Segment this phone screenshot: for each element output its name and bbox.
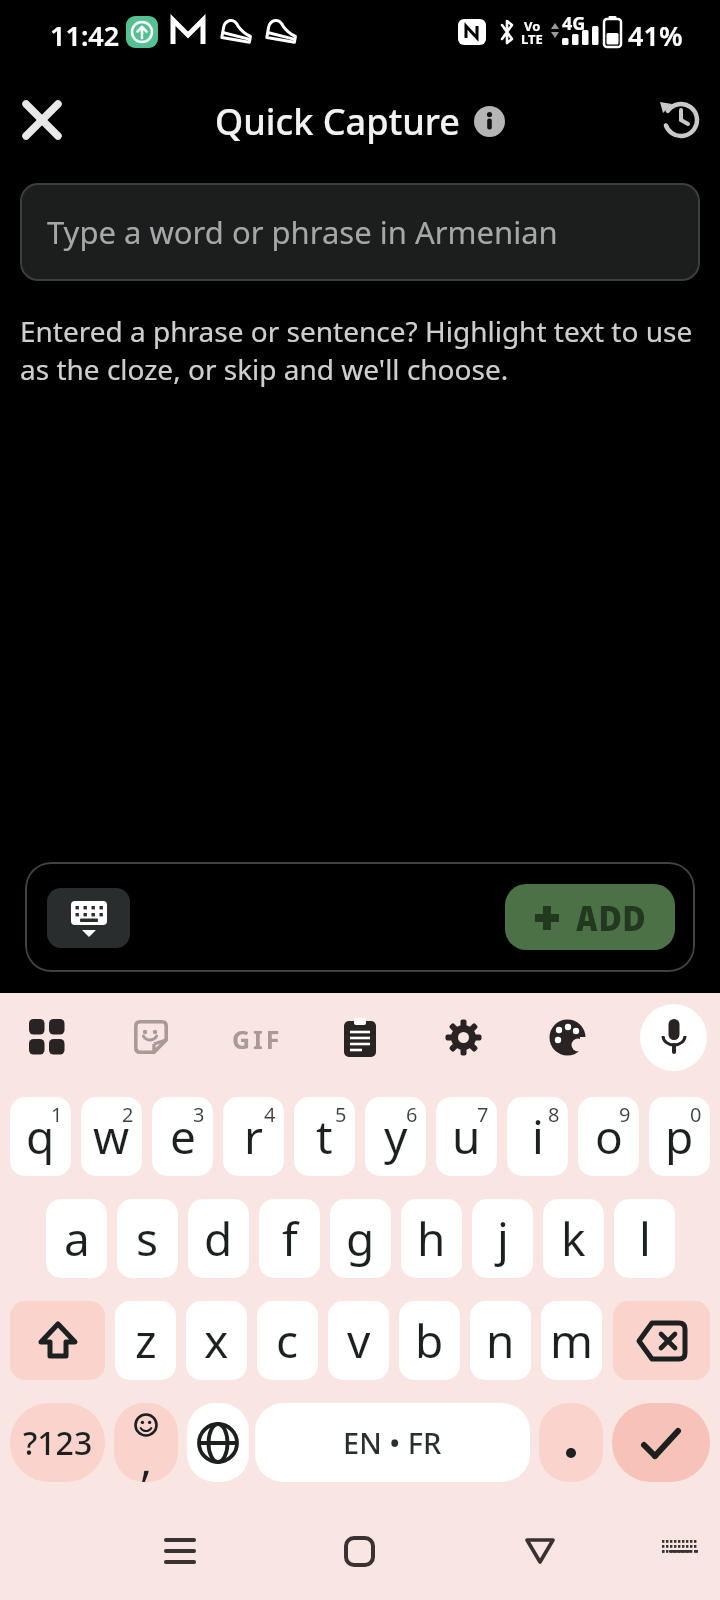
staticText: n — [486, 1309, 515, 1372]
button[interactable] — [10, 1301, 105, 1380]
staticText: k — [561, 1207, 586, 1270]
staticText: i — [532, 1105, 544, 1168]
button[interactable]: ?123 — [10, 1403, 105, 1482]
button[interactable]: c — [257, 1301, 318, 1380]
button[interactable] — [16, 94, 68, 146]
staticText: 0 — [690, 1101, 702, 1128]
staticText: Quick Capture — [215, 97, 460, 146]
staticText: u — [452, 1105, 481, 1168]
staticText: 5 — [335, 1101, 347, 1128]
button[interactable]: o — [578, 1097, 639, 1176]
staticText: s — [136, 1207, 159, 1270]
staticText: 9 — [619, 1101, 631, 1128]
staticText: g — [346, 1207, 375, 1270]
button[interactable]: h — [401, 1199, 462, 1278]
button[interactable] — [539, 1403, 603, 1482]
staticText: LTE — [521, 30, 543, 48]
button[interactable]: r — [223, 1097, 284, 1176]
staticText: 6 — [406, 1101, 418, 1128]
button[interactable] — [510, 1521, 570, 1581]
button[interactable]: e — [152, 1097, 213, 1176]
button[interactable] — [640, 1004, 707, 1071]
staticText: 11:42 — [50, 17, 120, 54]
staticText: ?123 — [23, 1421, 93, 1465]
button[interactable]: b — [399, 1301, 460, 1380]
staticText: 2 — [122, 1101, 134, 1128]
staticText: x — [204, 1309, 229, 1372]
staticText: Vo — [524, 17, 541, 35]
button[interactable] — [549, 1019, 586, 1056]
staticText: 8 — [548, 1101, 560, 1128]
button[interactable]: s — [117, 1199, 178, 1278]
staticText: Type a word or phrase in Armenian — [47, 211, 558, 253]
button[interactable] — [652, 92, 708, 148]
staticText: 41% — [628, 17, 683, 54]
staticText: EN • FR — [343, 1423, 442, 1462]
staticText: GIF — [232, 1022, 283, 1056]
button[interactable]: l — [614, 1199, 675, 1278]
staticText: t — [316, 1105, 333, 1168]
button[interactable]: z — [115, 1301, 176, 1380]
button[interactable]: i — [507, 1097, 568, 1176]
staticText: p — [665, 1105, 694, 1168]
staticText: 3 — [193, 1101, 205, 1128]
staticText: h — [417, 1207, 446, 1270]
button[interactable]: ADD — [505, 884, 675, 950]
button[interactable]: g — [330, 1199, 391, 1278]
button[interactable] — [445, 1019, 482, 1056]
staticText: r — [244, 1105, 263, 1168]
staticText: z — [135, 1309, 157, 1372]
staticText: y — [384, 1105, 408, 1168]
button[interactable] — [134, 1020, 168, 1054]
button[interactable]: x — [186, 1301, 247, 1380]
staticText: m — [550, 1309, 594, 1372]
staticText: l — [639, 1207, 651, 1270]
staticText: ADD — [576, 893, 647, 942]
staticText: c — [276, 1309, 299, 1372]
button[interactable]: k — [543, 1199, 604, 1278]
button[interactable] — [150, 1521, 210, 1581]
button[interactable]: v — [328, 1301, 389, 1380]
button[interactable]: f — [259, 1199, 320, 1278]
staticText: d — [204, 1207, 233, 1270]
button[interactable]: n — [470, 1301, 531, 1380]
button[interactable]: y — [365, 1097, 426, 1176]
staticText: a — [64, 1207, 90, 1270]
staticText: 1 — [51, 1101, 63, 1128]
button[interactable]: EN • FR — [255, 1403, 530, 1482]
button[interactable]: w — [81, 1097, 142, 1176]
staticText: o — [595, 1105, 623, 1168]
button[interactable]: j — [472, 1199, 533, 1278]
button[interactable]: u — [436, 1097, 497, 1176]
staticText: e — [170, 1105, 196, 1168]
button[interactable]: d — [188, 1199, 249, 1278]
staticText: 4 — [264, 1101, 276, 1128]
button[interactable]: p — [649, 1097, 710, 1176]
button[interactable] — [612, 1403, 710, 1482]
button[interactable]: q — [10, 1097, 71, 1176]
button[interactable]: , — [114, 1403, 178, 1482]
staticText: 4G — [562, 11, 586, 36]
button[interactable]: Type a word or phrase in Armenian — [20, 183, 700, 281]
staticText: 7 — [477, 1101, 489, 1128]
button[interactable] — [613, 1301, 710, 1380]
button[interactable] — [650, 1523, 710, 1583]
button[interactable] — [344, 1018, 376, 1057]
button[interactable]: m — [541, 1301, 602, 1380]
staticText: b — [415, 1309, 444, 1372]
staticText: q — [26, 1105, 55, 1168]
staticText: j — [497, 1207, 509, 1270]
button[interactable] — [47, 888, 130, 948]
button[interactable] — [329, 1521, 389, 1581]
staticText: w — [93, 1105, 130, 1168]
button[interactable]: t — [294, 1097, 355, 1176]
button[interactable] — [29, 1019, 65, 1055]
button[interactable]: a — [46, 1199, 107, 1278]
staticText: v — [347, 1309, 371, 1372]
staticText: Entered a phrase or sentence? Highlight … — [20, 312, 720, 388]
staticText: , — [140, 1427, 153, 1482]
button[interactable] — [474, 106, 505, 137]
staticText: f — [282, 1207, 298, 1270]
button[interactable] — [187, 1403, 249, 1482]
